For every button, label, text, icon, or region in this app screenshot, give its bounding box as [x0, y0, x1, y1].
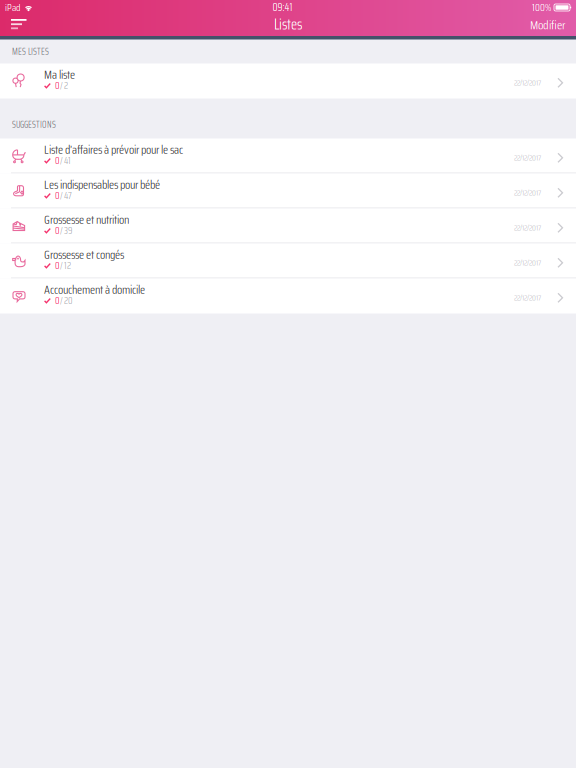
staticText: 09:41 [272, 1, 292, 14]
staticText: 0 [55, 81, 60, 91]
staticText: 2 [64, 81, 68, 91]
staticText: Les indispensables pour bébé [44, 178, 160, 191]
staticText: 0 [55, 296, 60, 306]
staticText: 12 [64, 261, 71, 271]
staticText: MES LISTES [12, 45, 49, 58]
staticText: Grossesse et nutrition [44, 213, 129, 226]
staticText: 22/12/2017 [514, 76, 541, 89]
staticText: iPad [5, 1, 21, 14]
button[interactable]: Modifier [520, 13, 576, 37]
staticText: 0 [55, 191, 60, 201]
staticText: 22/12/2017 [514, 256, 541, 269]
button[interactable]: Accouchement à domicile [0, 278, 576, 313]
staticText: 22/12/2017 [514, 291, 541, 304]
staticText: 22/12/2017 [514, 221, 541, 234]
staticText: 41 [64, 156, 71, 166]
staticText: Listes [274, 16, 302, 33]
staticText: / [60, 261, 63, 271]
staticText: / [60, 156, 63, 166]
staticText: / [60, 296, 63, 306]
staticText: 0 [55, 156, 60, 166]
button[interactable]: Liste d’affaires à prévoir pour le sac [0, 138, 576, 173]
button[interactable]: Ma liste [0, 63, 576, 98]
staticText: 39 [64, 226, 72, 236]
staticText: / [60, 81, 63, 91]
staticText: Modifier [530, 18, 565, 32]
button[interactable]: Grossesse et nutrition [0, 208, 576, 243]
staticText: Accouchement à domicile [44, 283, 145, 296]
staticText: Grossesse et congés [44, 248, 124, 261]
staticText: 22/12/2017 [514, 186, 541, 199]
staticText: 0 [55, 261, 60, 271]
staticText: Ma liste [44, 68, 75, 81]
staticText: Liste d’affaires à prévoir pour le sac [44, 143, 183, 156]
staticText: / [60, 226, 63, 236]
button[interactable]: Menu [0, 16, 37, 33]
staticText: 0 [55, 226, 60, 236]
staticText: 22/12/2017 [514, 151, 541, 164]
button[interactable]: Les indispensables pour bébé [0, 173, 576, 208]
staticText: 47 [64, 191, 72, 201]
staticText: SUGGESTIONS [12, 118, 56, 131]
staticText: 20 [64, 296, 73, 306]
staticText: / [60, 191, 63, 201]
button[interactable]: Grossesse et congés [0, 243, 576, 278]
staticText: 100% [532, 1, 551, 14]
